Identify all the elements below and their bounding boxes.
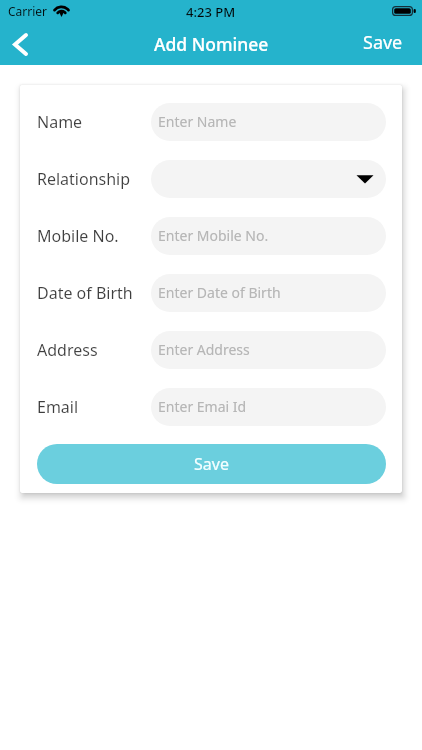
staticText: Add Nominee (154, 32, 269, 56)
button[interactable]: Name (151, 103, 386, 141)
staticText: Enter Date of Birth (158, 283, 281, 302)
staticText: Save (363, 30, 403, 55)
staticText: Date of Birth (37, 282, 151, 304)
button[interactable]: Date of Birth (151, 274, 386, 312)
staticText: Address (37, 339, 151, 361)
staticText: Enter Emai Id (158, 397, 247, 416)
staticText: Enter Address (158, 340, 250, 359)
staticText: Carrier (8, 3, 48, 19)
staticText: Enter Mobile No. (158, 226, 269, 245)
staticText: 4:23 PM (186, 3, 236, 21)
button[interactable]: Address (151, 331, 386, 369)
staticText: Mobile No. (37, 225, 151, 247)
staticText: Enter Name (158, 112, 237, 131)
staticText: Save (194, 453, 229, 475)
button[interactable]: Email (151, 388, 386, 426)
staticText: Name (37, 111, 151, 133)
button[interactable]: Relationship (151, 160, 386, 198)
button[interactable]: Save (347, 24, 422, 65)
staticText: Email (37, 396, 151, 418)
button[interactable]: Mobile No. (151, 217, 386, 255)
button[interactable]: Save (37, 444, 386, 484)
staticText: Relationship (37, 168, 151, 190)
button[interactable]: Back (0, 24, 40, 65)
